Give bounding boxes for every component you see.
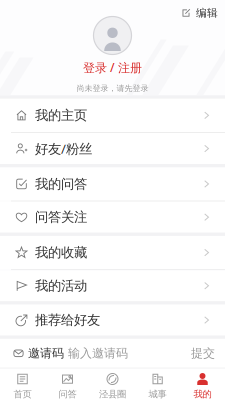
staticText: 我的活动: [35, 278, 87, 294]
button[interactable]: 泾县圈: [90, 368, 135, 400]
staticText: 我的主页: [35, 107, 87, 124]
staticText: 问答关注: [35, 209, 87, 225]
staticText: 首页: [13, 388, 31, 400]
button[interactable]: 我的活动: [0, 270, 225, 301]
staticText: 邀请码: [28, 346, 64, 361]
button[interactable]: 城事: [135, 368, 180, 400]
button[interactable]: 问答: [45, 368, 90, 400]
button[interactable]: 我的: [180, 368, 225, 400]
staticText: 提交: [191, 346, 215, 361]
button[interactable]: 我的问答: [0, 167, 225, 201]
staticText: 我的: [193, 388, 211, 400]
button[interactable]: 推荐给好友: [0, 304, 225, 336]
button[interactable]: 编辑: [176, 0, 225, 25]
staticText: 泾县圈: [99, 388, 126, 400]
button[interactable]: 我的收藏: [0, 236, 225, 269]
staticText: 问答: [58, 388, 76, 400]
staticText: 我的收藏: [35, 244, 87, 261]
staticText: 输入邀请码: [68, 346, 128, 361]
staticText: 我的问答: [35, 176, 87, 192]
staticText: 好友/粉丝: [35, 140, 92, 157]
button[interactable]: 我的主页: [0, 99, 225, 132]
button[interactable]: 问答关注: [0, 202, 225, 233]
staticText: 城事: [148, 388, 166, 400]
staticText: 编辑: [196, 6, 218, 20]
button[interactable]: 提交: [186, 341, 220, 366]
staticText: 登录 / 注册: [83, 59, 142, 75]
button[interactable]: 好友/粉丝: [0, 133, 225, 164]
staticText: 尚未登录，请先登录: [76, 83, 148, 93]
button[interactable]: 首页: [0, 368, 45, 400]
staticText: 推荐给好友: [35, 312, 100, 328]
